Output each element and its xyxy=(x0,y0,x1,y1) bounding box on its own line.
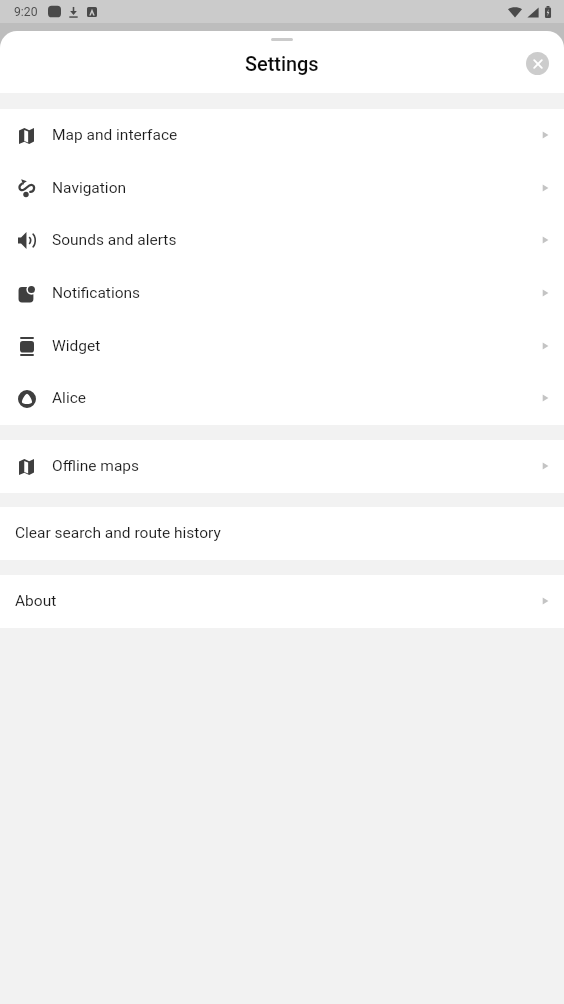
button[interactable]: Close xyxy=(526,52,549,75)
button[interactable]: Sounds and alerts xyxy=(0,214,564,267)
button[interactable]: Offline maps xyxy=(0,440,564,493)
staticText: Offline maps xyxy=(52,457,140,475)
staticText: Clear search and route history xyxy=(15,524,221,542)
button[interactable]: Widget xyxy=(0,320,564,373)
staticText: Settings xyxy=(245,53,319,76)
staticText: Notifications xyxy=(52,284,141,302)
button[interactable]: About xyxy=(0,575,564,628)
staticText: Alice xyxy=(52,389,86,407)
staticText: Widget xyxy=(52,337,101,355)
button[interactable]: Clear search and route history xyxy=(0,507,564,560)
staticText: About xyxy=(15,592,57,610)
staticText: Navigation xyxy=(52,179,127,197)
staticText: Map and interface xyxy=(52,126,178,144)
staticText: Sounds and alerts xyxy=(52,231,177,249)
button[interactable]: Notifications xyxy=(0,267,564,320)
staticText: 9:20 xyxy=(14,5,38,19)
button[interactable]: Map and interface xyxy=(0,109,564,162)
button[interactable]: Navigation xyxy=(0,162,564,215)
button[interactable]: Alice xyxy=(0,372,564,425)
